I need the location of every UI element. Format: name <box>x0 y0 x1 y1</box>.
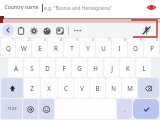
button[interactable]: Back <box>2 24 14 36</box>
button[interactable]: . <box>117 99 132 119</box>
button[interactable]: E <box>32 38 47 57</box>
button[interactable]: O <box>128 38 143 57</box>
button[interactable]: Backspace <box>138 78 159 98</box>
button[interactable]: Microphone off <box>140 24 153 37</box>
staticText: M <box>127 84 133 92</box>
staticText: D <box>45 64 50 72</box>
staticText: C <box>64 84 68 92</box>
button[interactable]: I <box>112 38 127 57</box>
staticText: e.g. "Bosnia and Herzegovina" <box>44 5 112 12</box>
staticText: 9 <box>140 38 142 42</box>
button[interactable]: More options <box>71 24 84 37</box>
staticText: N <box>111 84 116 92</box>
staticText: W <box>21 44 27 52</box>
button[interactable]: Z <box>24 78 40 98</box>
staticText: A <box>14 64 18 72</box>
staticText: 8 <box>124 38 126 42</box>
staticText: 0 <box>156 38 158 42</box>
staticText: L <box>142 64 146 72</box>
button[interactable]: F <box>56 58 71 77</box>
button[interactable]: A <box>8 58 23 77</box>
staticText: . <box>124 106 126 113</box>
staticText: G <box>77 64 82 72</box>
button[interactable]: Y <box>80 38 95 57</box>
staticText: ?123 <box>7 106 17 112</box>
button[interactable]: Enter <box>133 99 159 119</box>
button[interactable]: H <box>88 58 103 77</box>
staticText: S <box>30 64 34 72</box>
staticText: P <box>150 44 154 52</box>
staticText: X <box>47 84 51 92</box>
staticText: E <box>38 44 42 52</box>
staticText: 2 <box>28 38 30 42</box>
staticText: B <box>95 84 100 92</box>
button[interactable]: Translate <box>53 24 66 37</box>
button[interactable]: C <box>58 78 73 98</box>
button[interactable]: Emoji <box>39 99 54 119</box>
button[interactable]: V <box>74 78 89 98</box>
staticText: U <box>101 44 106 52</box>
staticText: J <box>111 64 113 72</box>
button[interactable]: Settings <box>27 24 40 37</box>
button[interactable]: e.g. "Bosnia and Herzegovina" <box>42 0 144 15</box>
button[interactable]: B <box>90 78 105 98</box>
button[interactable]: Q <box>1 38 15 57</box>
button[interactable]: U <box>96 38 111 57</box>
staticText: F <box>62 64 66 72</box>
staticText: V <box>80 84 84 92</box>
staticText: 4 <box>60 38 62 42</box>
staticText: I <box>118 44 121 52</box>
button[interactable]: P <box>144 38 159 57</box>
staticText: R <box>54 44 58 52</box>
button[interactable]: D <box>40 58 55 77</box>
staticText: 7 <box>108 38 110 42</box>
staticText: 3 <box>44 38 46 42</box>
button[interactable]: J <box>104 58 119 77</box>
button[interactable]: X <box>41 78 57 98</box>
button[interactable]: N <box>106 78 121 98</box>
staticText: 1 <box>12 38 14 42</box>
button[interactable]: Theme <box>40 24 53 37</box>
button[interactable]: K <box>120 58 135 77</box>
staticText: O <box>133 44 138 52</box>
button[interactable]: At sign <box>23 99 38 119</box>
button[interactable]: S <box>24 58 39 77</box>
staticText: T <box>70 44 74 52</box>
staticText: Country name <box>4 4 39 11</box>
button[interactable]: Clipboard <box>14 24 27 37</box>
staticText: H <box>93 64 98 72</box>
button[interactable]: W <box>16 38 31 57</box>
staticText: K <box>126 64 130 72</box>
button[interactable]: T <box>64 38 79 57</box>
staticText: 5 <box>76 38 78 42</box>
staticText: Y <box>86 44 90 52</box>
button[interactable]: L <box>136 58 151 77</box>
staticText: Q <box>6 44 11 52</box>
button[interactable]: ?123 <box>1 99 22 119</box>
button[interactable]: M <box>122 78 137 98</box>
button[interactable]: G <box>72 58 87 77</box>
button[interactable]: Toggle visibility <box>146 2 157 13</box>
button[interactable]: Shift <box>1 78 23 98</box>
staticText: 6 <box>92 38 94 42</box>
staticText: Z <box>30 84 34 92</box>
button[interactable]: R <box>48 38 63 57</box>
